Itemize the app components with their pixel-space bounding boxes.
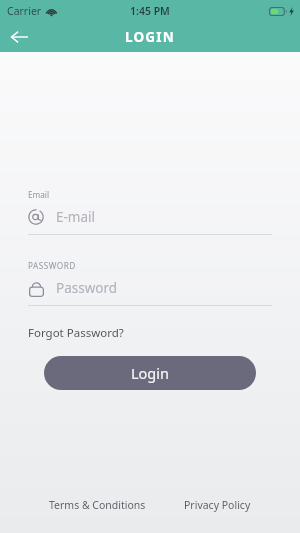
button[interactable]: Back: [0, 22, 38, 52]
staticText: LOGIN: [125, 28, 175, 46]
staticText: Email: [28, 189, 50, 200]
button[interactable]: Terms & Conditions: [43, 494, 152, 516]
button[interactable]: Email: [0, 189, 300, 235]
button[interactable]: PASSWORD: [0, 260, 300, 306]
button[interactable]: Forgot Password?: [28, 323, 124, 343]
staticText: E-mail: [56, 208, 96, 226]
staticText: Login: [131, 363, 169, 383]
button[interactable]: Privacy Policy: [178, 494, 257, 516]
staticText: Privacy Policy: [184, 498, 251, 512]
staticText: Carrier: [7, 4, 42, 18]
staticText: Terms & Conditions: [49, 498, 146, 512]
button[interactable]: Login: [44, 356, 256, 390]
staticText: Password: [56, 279, 118, 297]
staticText: PASSWORD: [28, 260, 76, 271]
staticText: Forgot Password?: [28, 325, 124, 341]
staticText: 1:45 PM: [130, 4, 170, 18]
